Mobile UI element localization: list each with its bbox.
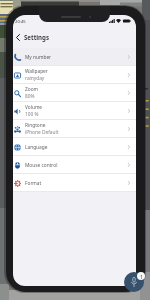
button[interactable]: Ringtone (13, 120, 136, 138)
staticText: 20:45 (15, 19, 26, 25)
staticText: 100 % (25, 111, 39, 118)
staticText: Wallpaper (25, 68, 48, 75)
staticText: Zoom (25, 86, 39, 93)
button[interactable]: Zoom (13, 84, 136, 102)
staticText: Mouse control (25, 162, 58, 169)
button[interactable]: Volume (13, 102, 136, 120)
staticText: Language (25, 144, 48, 151)
button[interactable]: Back (13, 30, 23, 44)
button[interactable]: Mouse control (13, 156, 136, 174)
button[interactable]: My number (13, 48, 136, 66)
staticText: Ringtone (25, 122, 46, 129)
staticText: rainyday (25, 75, 45, 82)
button[interactable]: Wallpaper (13, 66, 136, 84)
button[interactable]: Language (13, 138, 136, 156)
staticText: Volume (25, 104, 43, 111)
staticText: Format (25, 180, 42, 187)
button[interactable]: Format (13, 174, 136, 192)
staticText: Settings (24, 33, 49, 41)
staticText: 1 (140, 273, 143, 280)
staticText: iPhone Default (25, 129, 59, 136)
button[interactable]: Voice search (124, 272, 144, 292)
staticText: My number (25, 54, 52, 61)
staticText: 80% (25, 93, 35, 100)
